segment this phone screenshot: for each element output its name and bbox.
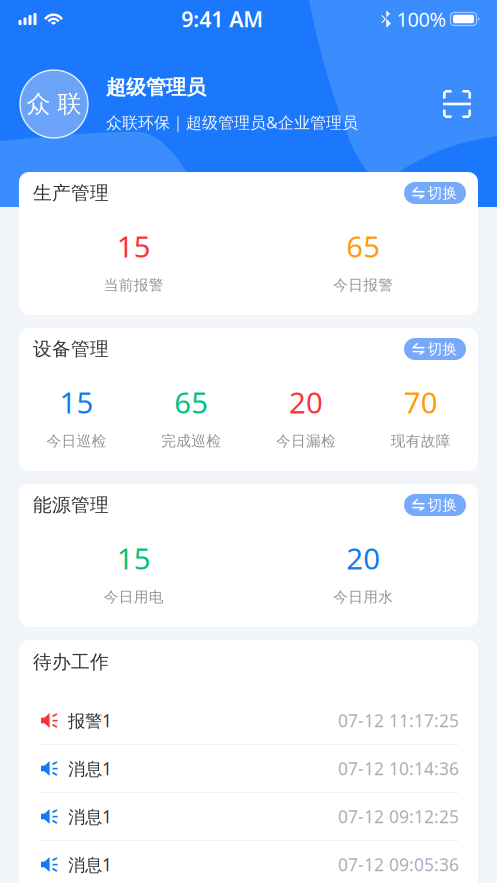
staticText: 100% [396,6,446,32]
staticText: 15 [117,538,151,577]
staticText: 消息1 [68,853,112,876]
button[interactable]: 扫一扫 [443,90,471,118]
staticText: 今日漏检 [276,432,336,450]
button[interactable]: 报警1 [19,697,478,745]
staticText: 当前报警 [104,276,164,294]
staticText: 设备管理 [33,337,109,360]
staticText: 今日用电 [104,588,164,606]
button[interactable]: 切换 [404,494,466,516]
staticText: 报警1 [68,709,112,732]
staticText: 待办工作 [33,650,109,673]
staticText: 65 [174,382,208,421]
staticText: 20 [346,538,380,577]
staticText: 65 [346,226,380,265]
staticText: 今日巡检 [46,432,106,450]
button[interactable]: 切换 [404,338,466,360]
button[interactable]: 消息1 [19,745,478,793]
staticText: 07-12 10:14:36 [338,757,459,780]
staticText: 众 联 [26,89,81,119]
staticText: 完成巡检 [161,432,221,450]
staticText: 今日用水 [333,588,393,606]
staticText: 15 [59,382,93,421]
staticText: 70 [404,382,438,421]
staticText: 20 [289,382,323,421]
button[interactable]: 消息1 [19,793,478,841]
staticText: 今日报警 [333,276,393,294]
button[interactable]: 切换 [404,182,466,204]
staticText: 消息1 [68,805,112,828]
staticText: 切换 [427,184,457,202]
staticText: 07-12 09:12:25 [338,805,459,828]
staticText: 众联环保｜超级管理员&企业管理员 [106,112,358,133]
staticText: 9:41 AM [181,5,263,33]
staticText: 切换 [427,496,457,514]
staticText: 07-12 11:17:25 [338,709,459,732]
staticText: 07-12 09:05:36 [338,853,459,876]
staticText: 切换 [427,340,457,358]
staticText: 消息1 [68,757,112,780]
staticText: 能源管理 [33,493,109,516]
staticText: 生产管理 [33,181,109,204]
staticText: 15 [117,226,151,265]
staticText: 现有故障 [391,432,451,450]
button[interactable]: 消息1 [19,841,478,883]
staticText: 超级管理员 [106,75,206,100]
